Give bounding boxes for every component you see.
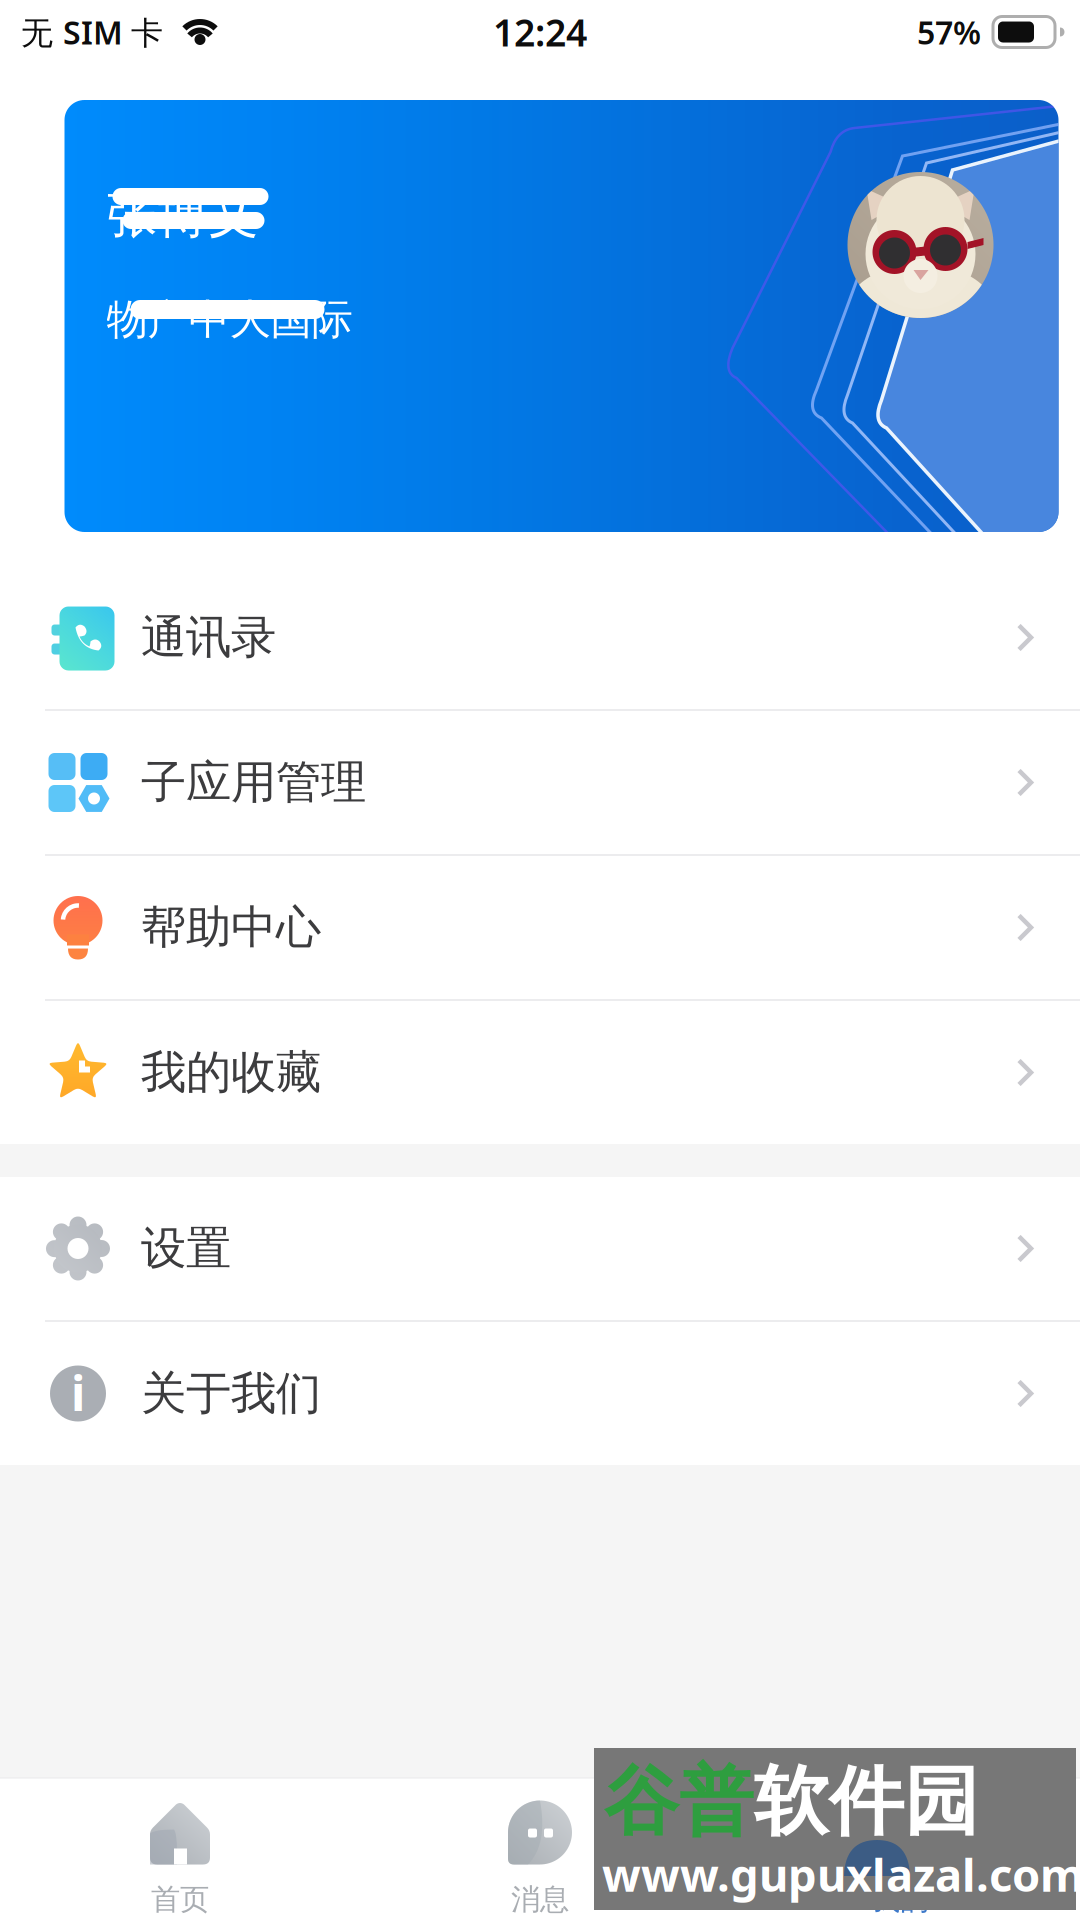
button[interactable]: i	[0, 1322, 1080, 1465]
staticText: 谷普	[604, 1756, 754, 1848]
staticText: 首页	[151, 1881, 209, 1917]
button[interactable]: 设置	[0, 1177, 1080, 1320]
staticText: 软件园	[754, 1756, 979, 1848]
staticText: 物产中大国际	[106, 294, 352, 345]
button[interactable]: 消息	[360, 1778, 720, 1920]
staticText: 设置	[141, 1221, 231, 1276]
button[interactable]: 首页	[0, 1778, 360, 1920]
staticText: 12:24	[493, 7, 587, 57]
staticText: 张博文	[106, 184, 259, 246]
staticText: 关于我们	[141, 1366, 321, 1421]
staticText: 帮助中心	[141, 900, 321, 955]
button[interactable]: 我的	[720, 1778, 1080, 1920]
button[interactable]: 帮助中心	[0, 856, 1080, 999]
button[interactable]: 我的收藏	[0, 1001, 1080, 1144]
staticText: 通讯录	[141, 610, 276, 665]
staticText: i	[71, 1361, 85, 1424]
staticText: 子应用管理	[141, 755, 366, 810]
staticText: www.gupuxlazal.com	[602, 1844, 1080, 1904]
staticText: 57%	[917, 11, 981, 53]
button[interactable]: 子应用管理	[0, 711, 1080, 854]
staticText: 我的收藏	[141, 1045, 321, 1100]
staticText: 无 SIM 卡	[21, 11, 163, 53]
staticText: 我的	[871, 1881, 929, 1917]
button[interactable]: 通讯录	[0, 566, 1080, 709]
staticText: 消息	[511, 1881, 569, 1917]
